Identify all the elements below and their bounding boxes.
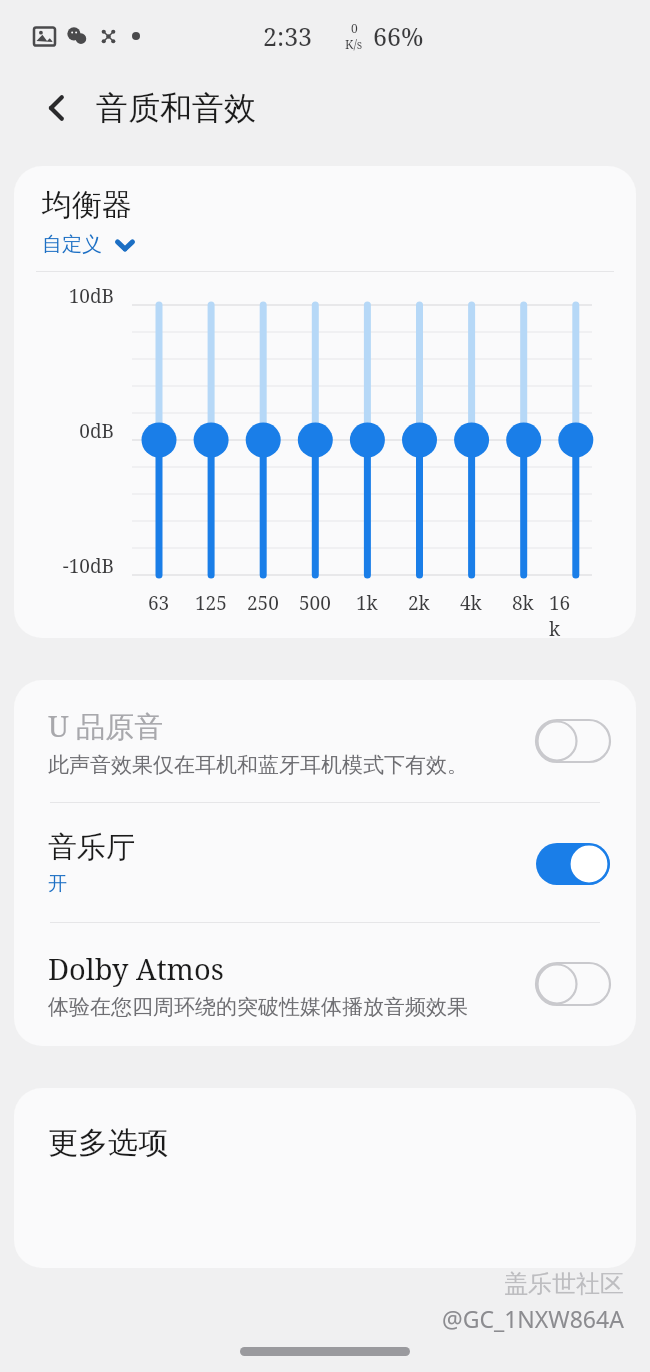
staticText: U 品原音 (48, 706, 164, 746)
staticText: 体验在您四周环绕的突破性媒体播放音频效果 (48, 994, 468, 1020)
staticText: -10dB (48, 553, 114, 579)
button[interactable]: U 品原音 (14, 680, 636, 802)
button[interactable]: 更多选项 (14, 1088, 636, 1162)
staticText: 250 (247, 590, 279, 616)
button[interactable]: Dolby Atmos (14, 923, 636, 1046)
staticText: @GC_1NXW864A (442, 1303, 624, 1334)
staticText: 0 (351, 20, 358, 36)
staticText: 自定义 (42, 232, 102, 257)
staticText: 音乐厅 (48, 829, 135, 866)
button[interactable]: Off (536, 963, 610, 1005)
staticText: 0dB (56, 418, 114, 444)
staticText: 10dB (56, 283, 114, 309)
staticText: 500 (299, 590, 331, 616)
staticText: 2:33 (263, 19, 313, 53)
button[interactable]: 音乐厅 (14, 803, 636, 922)
staticText: 均衡器 (42, 186, 132, 224)
staticText: 音质和音效 (96, 88, 256, 128)
staticText: Dolby Atmos (48, 949, 224, 988)
staticText: 此声音效果仅在耳机和蓝牙耳机模式下有效。 (48, 752, 468, 778)
staticText: 更多选项 (48, 1124, 168, 1162)
staticText: 66% (373, 19, 424, 53)
staticText: 8k (512, 590, 534, 616)
staticText: 16k (549, 590, 574, 638)
staticText: 2k (408, 590, 430, 616)
staticText: 1k (356, 590, 378, 616)
staticText: 盖乐世社区 (504, 1269, 624, 1299)
staticText: 开 (48, 872, 67, 896)
button[interactable]: Back (34, 85, 80, 131)
button[interactable]: On (536, 843, 610, 885)
button[interactable]: Off (536, 720, 610, 762)
staticText: 63 (148, 590, 170, 616)
staticText: 4k (460, 590, 482, 616)
button[interactable]: 自定义 (42, 232, 136, 257)
staticText: 125 (195, 590, 227, 616)
staticText: K/s (345, 36, 363, 52)
